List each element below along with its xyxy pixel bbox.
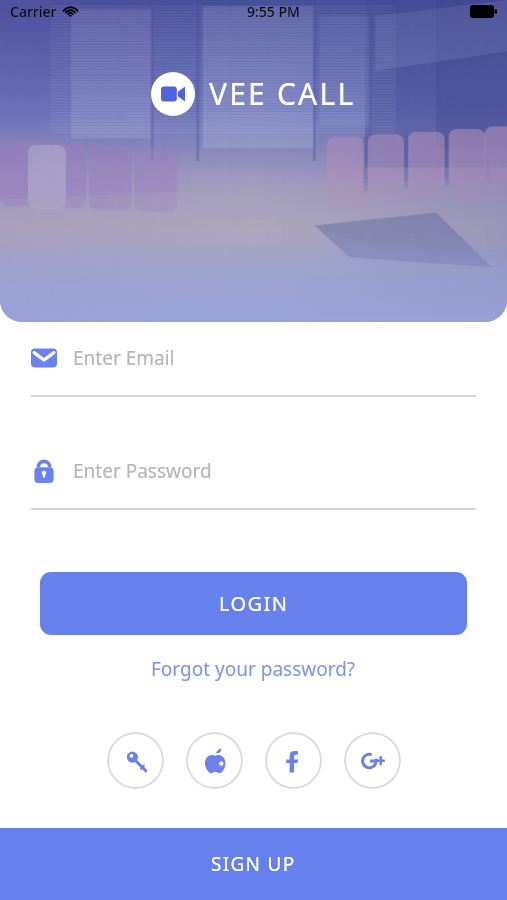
button[interactable]: Forgot your password?: [141, 651, 366, 687]
button[interactable]: Sign in with Apple: [186, 732, 243, 789]
staticText: Forgot your password?: [151, 656, 356, 682]
button[interactable]: Enter Email: [0, 341, 507, 397]
staticText: VEE CALL: [209, 73, 356, 114]
button[interactable]: Sign in with Facebook: [265, 732, 322, 789]
button[interactable]: SIGN UP: [0, 828, 507, 900]
staticText: LOGIN: [219, 590, 289, 617]
button[interactable]: LOGIN: [40, 572, 467, 635]
staticText: Carrier: [10, 2, 57, 21]
staticText: Enter Password: [73, 458, 212, 484]
staticText: SIGN UP: [211, 851, 296, 877]
button[interactable]: Sign in with key: [107, 732, 164, 789]
staticText: 9:55 PM: [247, 2, 300, 21]
staticText: Enter Email: [73, 345, 175, 371]
button[interactable]: Sign in with Google: [344, 732, 401, 789]
button[interactable]: Enter Password: [0, 454, 507, 510]
